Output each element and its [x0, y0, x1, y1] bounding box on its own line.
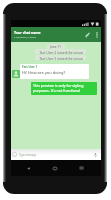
button[interactable]: Test User 3 joined the group — [35, 55, 86, 60]
button[interactable]: More options — [93, 27, 101, 42]
staticText: 3 members, 2 online — [14, 36, 37, 39]
staticText: Test User 3 joined the group — [39, 56, 83, 60]
staticText: Test User 2 joined the group — [39, 50, 83, 54]
button[interactable]: Test User 1 — [20, 64, 89, 79]
button[interactable]: Type message — [11, 149, 101, 160]
button[interactable]: Home — [47, 162, 63, 174]
staticText: June 11 — [50, 45, 62, 49]
button[interactable]: Test User 2 joined the group — [35, 49, 86, 54]
staticText: This preview is only for styling purpose… — [33, 83, 95, 93]
button[interactable]: This preview is only for styling purpose… — [31, 82, 97, 95]
staticText: Your chat name — [14, 30, 41, 35]
staticText: Type message — [19, 153, 94, 157]
button[interactable]: Recents — [73, 162, 89, 174]
staticText: Test User 1 — [22, 65, 38, 69]
button[interactable]: Your chat name — [11, 27, 101, 42]
button[interactable]: Attach — [83, 27, 93, 42]
staticText: Hi! How are you doing? — [22, 70, 66, 75]
button[interactable]: Back — [20, 162, 36, 174]
